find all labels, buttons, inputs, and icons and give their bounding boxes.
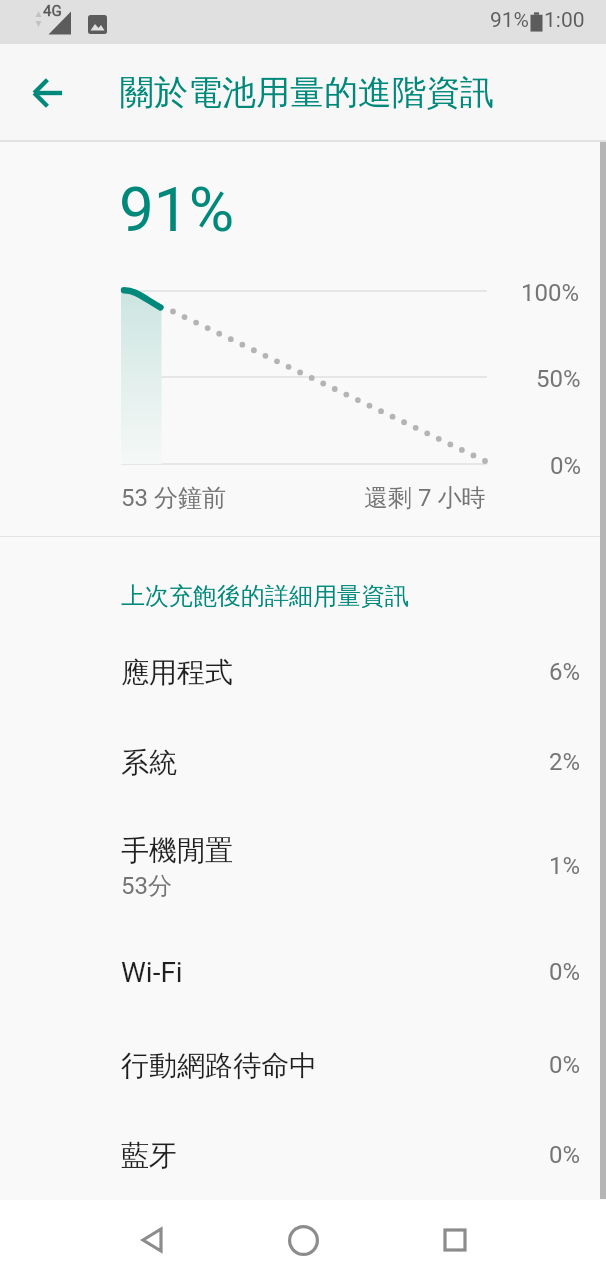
button[interactable]: 行動網路待命中 (0, 1020, 606, 1110)
staticText: 藍牙 (121, 1138, 177, 1173)
staticText: 50% (536, 365, 581, 393)
button[interactable]: 上次充飽後的詳細用量資訊 (0, 537, 606, 627)
button[interactable]: Recents (415, 1200, 495, 1280)
staticText: 上次充飽後的詳細用量資訊 (121, 581, 409, 611)
staticText: 系統 (121, 745, 177, 780)
staticText: 還剩 7 小時 (364, 483, 486, 513)
staticText: 手機閒置 (121, 833, 233, 868)
button[interactable]: 應用程式 (0, 627, 606, 717)
staticText: 100% (521, 279, 580, 307)
staticText: 1:00 (544, 8, 585, 33)
staticText: 53 分鐘前 (121, 483, 226, 513)
staticText: 4G (43, 2, 62, 20)
staticText: 行動網路待命中 (121, 1048, 317, 1083)
button[interactable]: Home (263, 1200, 343, 1280)
staticText: Wi-Fi (121, 956, 183, 989)
button[interactable]: 系統 (0, 717, 606, 807)
staticText: 91% (490, 8, 529, 33)
button[interactable]: Back (9, 54, 87, 132)
staticText: 2% (548, 748, 580, 776)
button[interactable]: 手機閒置 (0, 804, 606, 927)
staticText: 53分 (121, 871, 172, 901)
staticText: 關於電池用量的進階資訊 (120, 71, 494, 114)
button[interactable]: 藍牙 (0, 1110, 606, 1200)
staticText: 應用程式 (121, 655, 233, 690)
staticText: 1% (548, 852, 580, 880)
button[interactable]: Wi-Fi (0, 927, 606, 1017)
staticText: 0% (550, 452, 582, 480)
button[interactable]: Back (112, 1200, 192, 1280)
staticText: 0% (548, 958, 580, 986)
staticText: 0% (548, 1051, 580, 1079)
staticText: 91% (119, 173, 235, 246)
staticText: 6% (548, 658, 580, 686)
staticText: 0% (548, 1141, 580, 1169)
